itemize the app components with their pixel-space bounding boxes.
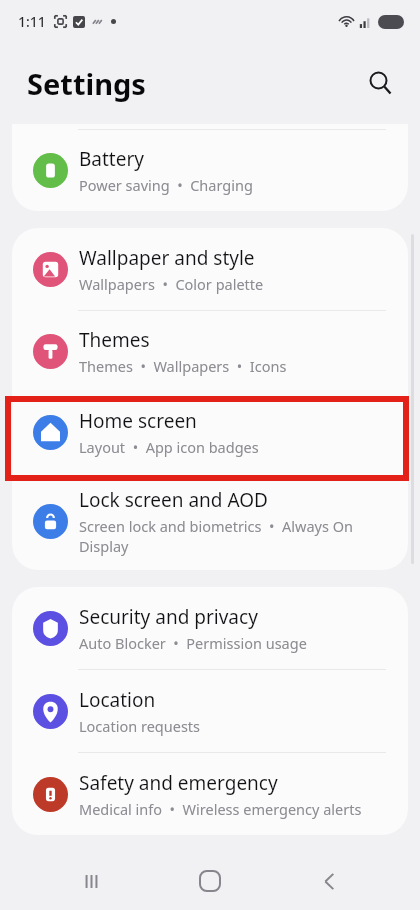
staticText: Battery	[79, 146, 144, 172]
button[interactable]: Recent apps	[63, 853, 119, 909]
staticText: 1:11	[18, 12, 46, 31]
staticText: Location requests	[79, 716, 201, 736]
button[interactable]: Safety and emergency	[12, 753, 408, 835]
button[interactable]: Back	[301, 853, 357, 909]
staticText: Medical info • Wireless emergency alerts	[79, 799, 362, 819]
staticText: Security and privacy	[79, 604, 258, 630]
button[interactable]: Home screen	[12, 391, 408, 473]
staticText: Themes	[79, 327, 150, 353]
button[interactable]: Location	[12, 670, 408, 752]
button[interactable]: Security and privacy	[12, 587, 408, 669]
staticText: Settings	[27, 64, 146, 103]
staticText: Lock screen and AOD	[79, 487, 268, 513]
button[interactable]: Themes	[12, 311, 408, 391]
staticText: Power saving • Charging	[79, 175, 253, 195]
button[interactable]: Lock screen and AOD	[12, 473, 408, 570]
staticText: Location	[79, 687, 156, 713]
staticText: Home screen	[79, 408, 197, 434]
staticText: Themes • Wallpapers • Icons	[79, 356, 287, 376]
button[interactable]: Wallpaper and style	[12, 228, 408, 310]
button[interactable]: Search	[357, 60, 403, 106]
staticText: Layout • App icon badges	[79, 437, 259, 457]
staticText: Auto Blocker • Permission usage	[79, 633, 307, 653]
button[interactable]: Home	[182, 853, 238, 909]
staticText: Wallpapers • Color palette	[79, 274, 264, 294]
staticText: Screen lock and biometrics • Always On D…	[79, 516, 353, 556]
staticText: Wallpaper and style	[79, 245, 255, 271]
staticText: Safety and emergency	[79, 770, 278, 796]
button[interactable]: Battery	[12, 130, 408, 211]
